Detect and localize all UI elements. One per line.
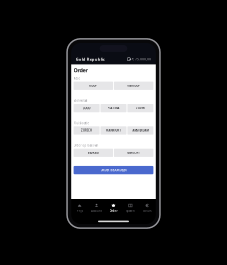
button[interactable]: PLATINA — [100, 104, 126, 112]
staticText: ZILVER — [136, 106, 145, 110]
button[interactable]: Order — [105, 203, 122, 213]
staticText: Sparen — [126, 209, 135, 213]
staticText: € 75.000,00 — [132, 57, 151, 61]
button[interactable]: BEDRAG — [74, 149, 113, 157]
button[interactable]: Saldo — [127, 57, 151, 61]
staticText: KOOP — [89, 84, 97, 87]
staticText: AMSTERDAM — [132, 129, 148, 132]
button[interactable]: AMSTERDAM — [127, 126, 153, 135]
staticText: ORDER BEOORDELEN — [100, 168, 126, 172]
staticText: FRANKFURT — [105, 129, 121, 132]
button[interactable]: FRANKFURT — [100, 126, 126, 135]
staticText: Order op basis van — [74, 144, 99, 147]
button[interactable]: KOOP — [74, 82, 113, 90]
staticText: VERKOOP — [127, 84, 140, 87]
button[interactable]: ZILVER — [127, 104, 153, 112]
staticText: Order — [109, 209, 117, 213]
staticText: ZÜRICH — [81, 129, 92, 132]
staticText: Order — [74, 67, 88, 74]
button[interactable]: Sparen — [122, 203, 139, 213]
button[interactable]: Account — [88, 203, 105, 213]
staticText: PLATINA — [107, 106, 119, 110]
button[interactable]: GEWICHT — [114, 149, 153, 157]
staticText: Beurs — [143, 209, 151, 213]
staticText: BEDRAG — [88, 151, 99, 154]
staticText: Prijs — [77, 209, 83, 213]
button[interactable]: Prijs — [71, 203, 88, 213]
button[interactable]: Beurs — [139, 203, 156, 213]
staticText: Edelmetaal — [74, 99, 88, 102]
button[interactable]: GOUD — [74, 104, 100, 112]
staticText: GEWICHT — [127, 151, 140, 154]
staticText: Kluislocatie — [74, 121, 90, 125]
staticText: Gold Republic — [76, 56, 105, 62]
button[interactable]: VERKOOP — [114, 82, 153, 90]
staticText: Account — [91, 209, 102, 213]
button[interactable]: ORDER BEOORDELEN — [74, 166, 153, 174]
button[interactable]: ZÜRICH — [74, 126, 100, 135]
staticText: GOUD — [83, 106, 91, 110]
staticText: Actie — [74, 77, 81, 80]
